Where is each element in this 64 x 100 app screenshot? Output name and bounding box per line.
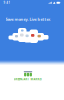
- staticText: Save money. Live better.: [5, 16, 50, 22]
- staticText: 9:41: [3, 1, 10, 4]
- staticText: GREENCART MARKET: [13, 77, 42, 81]
